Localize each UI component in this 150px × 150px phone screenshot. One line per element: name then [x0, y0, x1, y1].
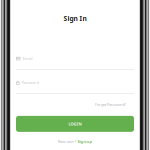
staticText: Signup	[77, 139, 92, 144]
staticText: Sign In	[63, 14, 86, 23]
staticText: Email	[22, 56, 32, 61]
button[interactable]: Email	[16, 50, 134, 70]
staticText: New user?	[57, 139, 77, 144]
staticText: LOGIN	[68, 121, 81, 126]
button[interactable]: New user?	[16, 139, 134, 144]
button[interactable]: Password	[16, 74, 134, 94]
button[interactable]: LOGIN	[16, 116, 134, 132]
button[interactable]: Forgot Password?	[16, 102, 134, 107]
staticText: Password	[22, 80, 39, 85]
staticText: Forgot Password?	[95, 102, 126, 107]
